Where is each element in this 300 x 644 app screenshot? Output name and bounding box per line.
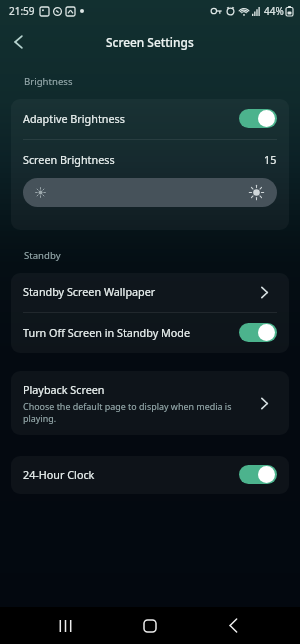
button[interactable]: Home [127,607,173,644]
staticText: Choose the default page to display when … [23,400,251,424]
staticText: 24-Hour Clock [23,467,239,482]
staticText: Playback Screen [23,382,105,397]
button[interactable]: 24-Hour Clock [11,456,289,494]
staticText: 21:59 [9,4,35,18]
staticText: 15 [264,152,277,167]
staticText: Screen Settings [106,34,194,50]
staticText: Turn Off Screen in Standby Mode [23,325,239,340]
button[interactable]: Back [3,26,35,58]
button[interactable]: Back [210,607,256,644]
button[interactable]: Recents [42,607,88,644]
button[interactable]: Playback Screen [11,371,289,435]
staticText: Standby Screen Wallpaper [23,284,261,299]
staticText: 44% [264,4,284,18]
staticText: Adaptive Brightness [23,111,239,126]
button[interactable]: Brightness slider [23,178,277,207]
staticText: Screen Brightness [23,152,264,167]
button[interactable]: Turn Off Screen in Standby Mode [11,313,289,353]
button[interactable]: Standby Screen Wallpaper [11,273,289,312]
staticText: Brightness [24,75,73,88]
staticText: Standby [24,249,61,262]
button[interactable]: Adaptive Brightness [11,99,289,139]
